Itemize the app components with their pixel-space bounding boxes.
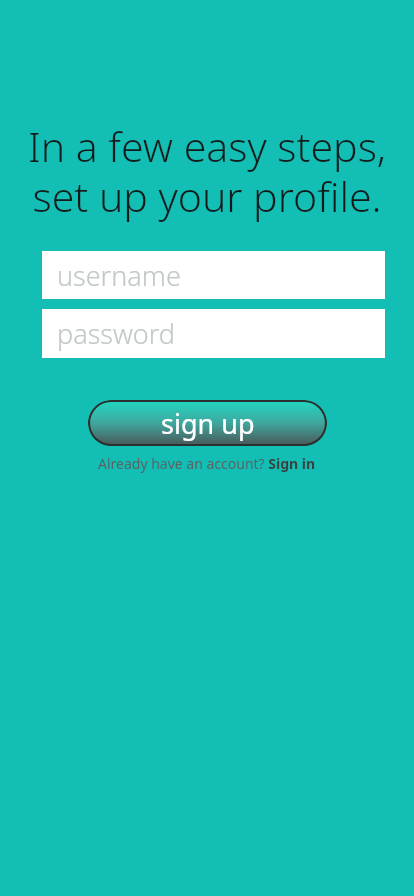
staticText: Already have an account? Sign in bbox=[98, 454, 316, 473]
staticText: In a few easy steps, set up your profile… bbox=[16, 118, 398, 224]
button[interactable]: sign up bbox=[88, 400, 327, 446]
button[interactable]: password bbox=[42, 309, 385, 358]
button[interactable]: username bbox=[42, 251, 385, 299]
staticText: username bbox=[57, 257, 181, 294]
staticText: sign up bbox=[161, 405, 255, 442]
staticText: password bbox=[57, 315, 175, 352]
button[interactable]: Already have an account? Sign in bbox=[98, 454, 316, 473]
